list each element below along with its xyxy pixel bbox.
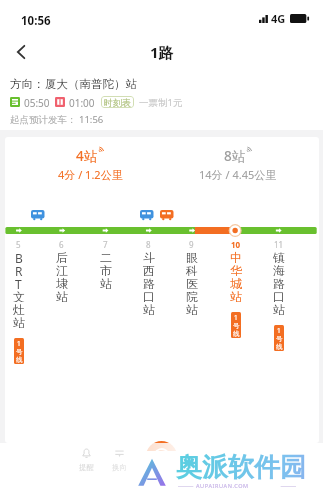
staticText: 西 — [143, 263, 155, 276]
staticText: 11:56 — [79, 113, 104, 126]
staticText: 05:50 — [24, 96, 50, 108]
staticText: 4站 — [76, 147, 98, 165]
button[interactable]: 4站 — [58, 147, 123, 182]
staticText: 5 — [16, 239, 21, 250]
staticText: 方向： — [10, 77, 45, 91]
button[interactable]: 提醒 — [70, 446, 102, 472]
staticText: 站 — [230, 289, 242, 302]
button[interactable]: B — [0, 250, 40, 364]
staticText: 院 — [186, 289, 198, 302]
staticText: 站 — [100, 276, 112, 289]
button[interactable]: 收藏 — [187, 446, 219, 472]
staticText: 二 — [100, 250, 112, 263]
staticText: 灶 — [13, 302, 25, 315]
button[interactable]: 后 — [40, 250, 83, 302]
staticText: 医 — [186, 276, 198, 289]
button[interactable]: Refresh — [146, 441, 177, 472]
staticText: 一票制1元 — [139, 96, 183, 108]
staticText: 镇 — [273, 250, 285, 263]
staticText: 换向 — [112, 463, 127, 472]
staticText: 起点预计发车： — [10, 114, 77, 126]
staticText: 斗 — [143, 250, 155, 263]
staticText: 口 — [143, 289, 155, 302]
button[interactable]: 斗 — [127, 250, 170, 315]
staticText: 号 — [233, 322, 240, 330]
staticText: 14分 / 4.45公里 — [199, 167, 277, 182]
staticText: 分享 — [230, 463, 245, 472]
staticText: 线 — [16, 356, 23, 364]
staticText: 11 — [274, 239, 284, 250]
button[interactable]: 分享 — [221, 446, 253, 472]
staticText: 线 — [233, 330, 240, 338]
staticText: 后 — [56, 250, 68, 263]
staticText: R — [15, 263, 23, 276]
staticText: 站 — [273, 302, 285, 315]
staticText: 时刻表 — [104, 97, 131, 108]
staticText: 8站 — [224, 147, 246, 165]
staticText: 4分 / 1.2公里 — [58, 167, 123, 182]
staticText: 1 — [277, 326, 281, 335]
staticText: 站 — [13, 315, 25, 328]
staticText: 路 — [273, 276, 285, 289]
staticText: 1 — [17, 339, 21, 348]
staticText: 4G — [271, 11, 286, 26]
staticText: 站 — [56, 289, 68, 302]
staticText: 号 — [276, 335, 283, 343]
button[interactable]: 时刻表 — [101, 96, 134, 108]
staticText: 眼 — [186, 250, 198, 263]
staticText: 海 — [273, 263, 285, 276]
staticText: 文 — [13, 289, 25, 302]
staticText: 9 — [189, 239, 194, 250]
button[interactable]: 8站 — [199, 147, 277, 182]
button[interactable]: 换向 — [103, 446, 135, 472]
button[interactable]: 中 — [214, 250, 257, 338]
staticText: AUPAIRUAN.COM — [196, 482, 249, 489]
staticText: 科 — [186, 263, 198, 276]
staticText: 埭 — [56, 276, 68, 289]
staticText: 奥派软件园 — [176, 451, 306, 484]
staticText: 1 — [234, 313, 238, 322]
staticText: 10:56 — [21, 13, 51, 29]
staticText: 收藏 — [196, 463, 211, 472]
staticText: 号 — [16, 348, 23, 356]
staticText: 站 — [186, 302, 198, 315]
staticText: 7 — [103, 239, 108, 250]
staticText: 01:00 — [69, 96, 95, 108]
staticText: 市 — [100, 263, 112, 276]
staticText: 10 — [231, 239, 241, 250]
staticText: B — [15, 250, 23, 263]
staticText: 6 — [59, 239, 64, 250]
staticText: T — [15, 276, 22, 289]
button[interactable]: 二 — [84, 250, 127, 289]
staticText: 线 — [276, 343, 283, 351]
staticText: 8 — [146, 239, 151, 250]
staticText: 1路 — [150, 42, 174, 62]
staticText: 城 — [230, 276, 242, 289]
staticText: 江 — [56, 263, 68, 276]
staticText: 提醒 — [79, 463, 94, 472]
staticText: 口 — [273, 289, 285, 302]
staticText: 站 — [143, 302, 155, 315]
button[interactable]: 眼 — [170, 250, 213, 315]
button[interactable]: 镇 — [257, 250, 300, 351]
button[interactable]: Back — [0, 38, 42, 66]
staticText: 中 — [230, 250, 242, 263]
staticText: 路 — [143, 276, 155, 289]
staticText: 华 — [230, 263, 242, 276]
staticText: 厦大（南普陀）站 — [45, 77, 137, 91]
